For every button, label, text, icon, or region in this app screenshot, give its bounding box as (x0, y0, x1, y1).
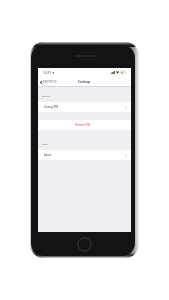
staticText: SECURITY (42, 95, 51, 98)
staticText: KRYPTOS (43, 80, 57, 84)
button[interactable]: Back to KRYPTOS (38, 78, 59, 86)
staticText: 10:29 (43, 71, 51, 75)
staticText: ABOUT (42, 143, 49, 146)
button[interactable]: Remove PIN (38, 120, 131, 130)
staticText: Change PIN (44, 105, 59, 108)
staticText: Settings (78, 80, 91, 84)
staticText: Remove PIN (75, 123, 90, 126)
staticText: About (44, 153, 52, 156)
button[interactable]: Change PIN (38, 102, 131, 112)
button[interactable]: About (38, 150, 131, 160)
